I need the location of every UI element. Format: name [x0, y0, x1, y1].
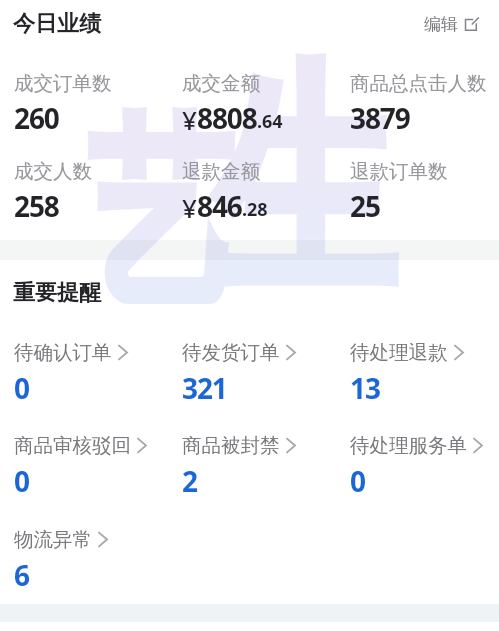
staticText: 物流异常 — [14, 527, 92, 552]
staticText: 6 — [14, 556, 29, 594]
staticText: 258 — [14, 187, 59, 225]
staticText: 321 — [182, 369, 227, 407]
staticText: 0 — [14, 369, 29, 407]
staticText: 0 — [350, 462, 365, 500]
button[interactable]: 商品被封禁 — [182, 433, 296, 496]
button[interactable]: 待发货订单 — [182, 340, 296, 403]
staticText: 成交人数 — [14, 159, 92, 184]
staticText: 2 — [182, 462, 197, 500]
staticText: 13 — [350, 369, 380, 407]
staticText: 成交金额 — [182, 71, 260, 96]
staticText: 25 — [350, 187, 380, 225]
staticText: 商品审核驳回 — [14, 433, 131, 458]
staticText: 今日业绩 — [13, 10, 101, 38]
staticText: 846 — [197, 187, 242, 225]
staticText: 3879 — [350, 99, 410, 137]
staticText: 待发货订单 — [182, 340, 280, 365]
staticText: 退款金额 — [182, 159, 260, 184]
staticText: ¥ — [182, 102, 197, 137]
other: 编辑 — [464, 17, 479, 32]
staticText: 成交订单数 — [14, 71, 112, 96]
staticText: 退款订单数 — [350, 159, 448, 184]
staticText: ¥ — [182, 190, 197, 225]
button[interactable]: 物流异常 — [14, 527, 108, 590]
staticText: .64 — [257, 109, 283, 134]
staticText: 待确认订单 — [14, 340, 112, 365]
staticText: 260 — [14, 99, 59, 137]
staticText: 0 — [14, 462, 29, 500]
staticText: 待处理退款 — [350, 340, 448, 365]
staticText: 待处理服务单 — [350, 433, 467, 458]
button[interactable]: 待确认订单 — [14, 340, 128, 403]
button[interactable]: 待处理服务单 — [350, 433, 483, 496]
button[interactable]: 编辑 — [422, 12, 481, 37]
staticText: 8808 — [197, 99, 257, 137]
staticText: 艺 — [88, 91, 230, 346]
staticText: 商品总点击人数 — [350, 71, 487, 96]
staticText: 商品被封禁 — [182, 433, 280, 458]
button[interactable]: 待处理退款 — [350, 340, 464, 403]
staticText: 生 — [214, 34, 393, 340]
staticText: 编辑 — [424, 14, 458, 35]
staticText: 重要提醒 — [13, 279, 101, 307]
button[interactable]: 商品审核驳回 — [14, 433, 147, 496]
staticText: .28 — [242, 197, 268, 222]
